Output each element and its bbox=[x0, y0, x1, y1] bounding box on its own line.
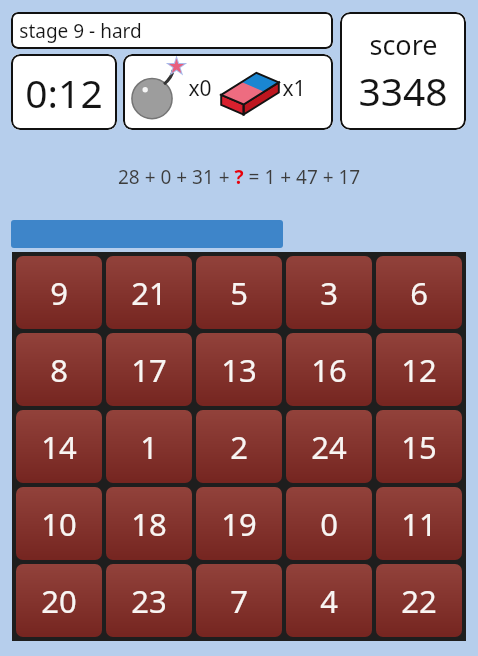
staticText: 18 bbox=[131, 503, 167, 545]
button[interactable]: 23 bbox=[106, 564, 192, 637]
staticText: 11 bbox=[401, 503, 437, 545]
staticText: stage 9 - hard bbox=[19, 18, 142, 44]
staticText: 5 bbox=[230, 272, 248, 314]
button[interactable]: 6 bbox=[376, 256, 462, 329]
staticText: 23 bbox=[131, 580, 167, 622]
button[interactable]: 7 bbox=[196, 564, 282, 637]
staticText: 28 + 0 + 31 + ? = 1 + 47 + 17 bbox=[118, 164, 361, 190]
other: Bomb item bbox=[128, 62, 188, 122]
button[interactable]: 0 bbox=[286, 487, 372, 560]
staticText: 6 bbox=[410, 272, 428, 314]
staticText: 14 bbox=[41, 426, 77, 468]
staticText: 1 bbox=[140, 426, 158, 468]
staticText: 0:12 bbox=[25, 66, 103, 119]
staticText: 15 bbox=[401, 426, 437, 468]
staticText: 8 bbox=[50, 349, 68, 391]
staticText: 20 bbox=[41, 580, 77, 622]
staticText: 4 bbox=[320, 580, 338, 622]
staticText: x0 bbox=[188, 74, 212, 103]
button[interactable]: 2 bbox=[196, 410, 282, 483]
button[interactable]: 24 bbox=[286, 410, 372, 483]
button[interactable]: 22 bbox=[376, 564, 462, 637]
button[interactable]: 21 bbox=[106, 256, 192, 329]
button[interactable]: Bomb item bbox=[123, 54, 333, 130]
staticText: 2 bbox=[230, 426, 248, 468]
staticText: 17 bbox=[131, 349, 167, 391]
staticText: 22 bbox=[401, 580, 437, 622]
staticText: 19 bbox=[221, 503, 257, 545]
button[interactable]: 9 bbox=[16, 256, 102, 329]
staticText: 0 bbox=[320, 503, 338, 545]
button[interactable]: stage 9 - hard bbox=[11, 12, 333, 49]
button[interactable]: 17 bbox=[106, 333, 192, 406]
staticText: 13 bbox=[221, 349, 257, 391]
button[interactable]: 14 bbox=[16, 410, 102, 483]
button[interactable]: score bbox=[340, 12, 466, 130]
button[interactable]: 3 bbox=[286, 256, 372, 329]
staticText: 21 bbox=[131, 272, 167, 314]
staticText: 10 bbox=[41, 503, 77, 545]
button[interactable]: 20 bbox=[16, 564, 102, 637]
button[interactable]: 18 bbox=[106, 487, 192, 560]
button[interactable]: 0:12 bbox=[11, 54, 117, 130]
staticText: 16 bbox=[311, 349, 347, 391]
button[interactable]: 19 bbox=[196, 487, 282, 560]
button[interactable]: 15 bbox=[376, 410, 462, 483]
staticText: 12 bbox=[401, 349, 437, 391]
button[interactable]: 5 bbox=[196, 256, 282, 329]
button[interactable]: 11 bbox=[376, 487, 462, 560]
other: Eraser item bbox=[218, 68, 282, 116]
button[interactable]: 8 bbox=[16, 333, 102, 406]
staticText: 3348 bbox=[358, 64, 448, 117]
button[interactable]: 1 bbox=[106, 410, 192, 483]
button[interactable]: 13 bbox=[196, 333, 282, 406]
staticText: 24 bbox=[311, 426, 347, 468]
staticText: score bbox=[369, 26, 438, 63]
staticText: 7 bbox=[230, 580, 248, 622]
button[interactable]: 4 bbox=[286, 564, 372, 637]
button[interactable]: 10 bbox=[16, 487, 102, 560]
staticText: x1 bbox=[282, 74, 306, 103]
staticText: 9 bbox=[50, 272, 68, 314]
staticText: 3 bbox=[320, 272, 338, 314]
button[interactable]: 16 bbox=[286, 333, 372, 406]
button[interactable]: 12 bbox=[376, 333, 462, 406]
